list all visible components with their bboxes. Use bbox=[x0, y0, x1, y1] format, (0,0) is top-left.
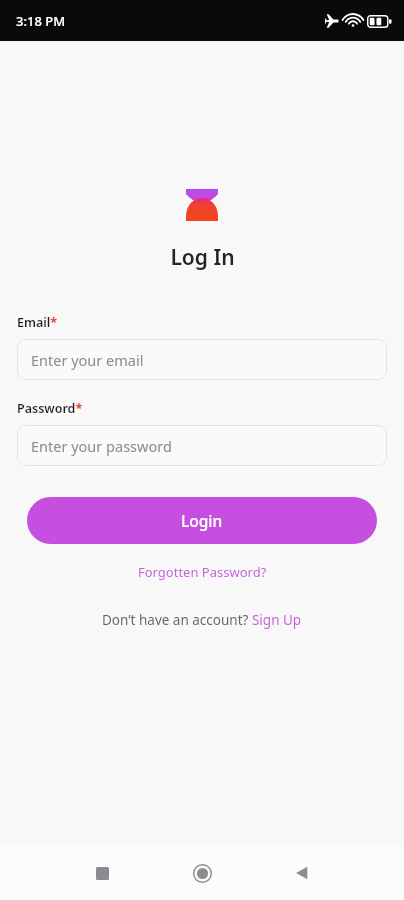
button[interactable]: Login bbox=[27, 497, 377, 544]
button[interactable]: Don’t have an account? Sign Up bbox=[96, 607, 308, 633]
staticText: Password* bbox=[17, 400, 83, 417]
staticText: Don’t have an account? Sign Up bbox=[102, 611, 302, 629]
staticText: 3:18 PM bbox=[16, 12, 66, 30]
button[interactable]: Recent apps bbox=[78, 849, 126, 897]
button[interactable]: Enter your email bbox=[17, 339, 387, 380]
button[interactable]: Back bbox=[278, 849, 326, 897]
staticText: Enter your email bbox=[31, 350, 144, 370]
button[interactable]: Forgotten Password? bbox=[132, 559, 273, 585]
staticText: Enter your password bbox=[31, 436, 172, 456]
staticText: Email* bbox=[17, 314, 58, 331]
button[interactable]: Enter your password bbox=[17, 425, 387, 466]
staticText: Login bbox=[181, 510, 223, 531]
staticText: Log In bbox=[170, 243, 235, 272]
staticText: Forgotten Password? bbox=[138, 563, 267, 581]
button[interactable]: Home bbox=[178, 849, 226, 897]
